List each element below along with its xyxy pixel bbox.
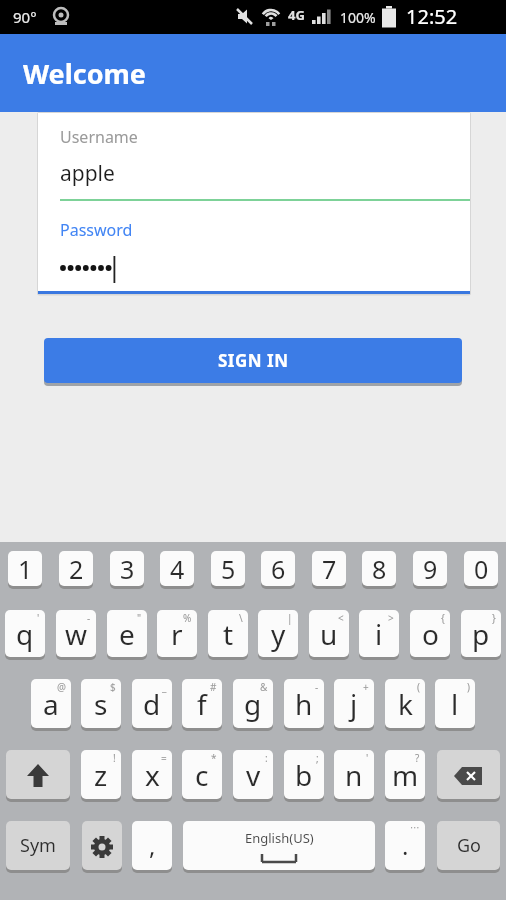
button[interactable] <box>38 201 470 294</box>
button[interactable]: b <box>284 750 324 802</box>
button[interactable]: k <box>385 679 425 731</box>
button[interactable]: s <box>81 679 121 731</box>
staticText: v <box>246 756 261 794</box>
staticText: 1 <box>18 552 33 586</box>
staticText: q <box>16 615 34 653</box>
button[interactable]: w <box>56 610 96 660</box>
staticText: f <box>197 685 207 723</box>
button[interactable]: m <box>385 750 425 802</box>
staticText: k <box>398 685 413 723</box>
button[interactable]: d <box>132 679 172 731</box>
button[interactable] <box>6 750 70 802</box>
staticText: 7 <box>322 552 337 586</box>
staticText: = <box>161 751 167 765</box>
staticText: 9 <box>423 552 438 586</box>
staticText: ' <box>366 751 369 765</box>
button[interactable]: i <box>359 610 399 660</box>
button[interactable]: h <box>284 679 324 731</box>
staticText: m <box>392 756 419 794</box>
staticText: , <box>149 829 156 862</box>
staticText: x <box>145 756 160 794</box>
button[interactable]: y <box>258 610 298 660</box>
button[interactable]: q <box>5 610 45 660</box>
button[interactable]: 2 <box>59 551 93 589</box>
staticText: 100% <box>340 8 376 27</box>
staticText: 5 <box>221 552 236 586</box>
staticText: y <box>271 615 286 653</box>
staticText: ) <box>467 680 470 694</box>
staticText: ? <box>415 751 420 765</box>
button[interactable]: Sym <box>6 821 70 873</box>
button[interactable]: 9 <box>413 551 447 589</box>
staticText: ! <box>113 751 116 765</box>
button[interactable]: . <box>385 821 425 873</box>
button[interactable]: 3 <box>110 551 144 589</box>
button[interactable]: 1 <box>8 551 42 589</box>
staticText: h <box>295 685 313 723</box>
staticText: < <box>338 611 344 625</box>
button[interactable]: z <box>81 750 121 802</box>
staticText: w <box>65 615 88 653</box>
button[interactable]: o <box>410 610 450 660</box>
staticText: s <box>94 685 108 723</box>
button[interactable]: e <box>107 610 147 660</box>
button[interactable]: 6 <box>261 551 295 589</box>
staticText: - <box>315 680 319 694</box>
button[interactable]: 7 <box>312 551 346 589</box>
staticText: ; <box>316 751 319 765</box>
staticText: t <box>223 615 234 653</box>
button[interactable]: l <box>435 679 475 731</box>
staticText: 4G <box>288 6 305 24</box>
button[interactable]: f <box>182 679 222 731</box>
staticText: 8 <box>372 552 387 586</box>
button[interactable]: t <box>208 610 248 660</box>
button[interactable]: , <box>132 821 172 873</box>
button[interactable]: u <box>309 610 349 660</box>
staticText: a <box>43 685 59 723</box>
staticText: \ <box>239 611 243 625</box>
button[interactable]: p <box>461 610 501 660</box>
staticText: u <box>320 615 338 653</box>
staticText: . <box>402 829 409 862</box>
staticText: r <box>171 615 183 653</box>
staticText: p <box>472 615 490 653</box>
staticText: 0 <box>474 552 489 586</box>
button[interactable]: 5 <box>211 551 245 589</box>
button[interactable] <box>82 821 122 873</box>
button[interactable]: v <box>233 750 273 802</box>
staticText: l <box>451 685 459 723</box>
staticText: { <box>441 611 445 625</box>
staticText: ( <box>417 680 420 694</box>
button[interactable]: x <box>132 750 172 802</box>
button[interactable]: Go <box>437 821 500 873</box>
button[interactable]: 4 <box>160 551 194 589</box>
button[interactable] <box>437 750 500 802</box>
staticText: } <box>492 611 496 625</box>
button[interactable] <box>38 113 470 201</box>
staticText: b <box>295 756 313 794</box>
staticText: Username <box>60 126 138 148</box>
staticText: SIGN IN <box>218 349 289 372</box>
staticText: Welcome <box>23 55 146 92</box>
button[interactable]: r <box>157 610 197 660</box>
button[interactable]: English(US) <box>183 821 375 873</box>
staticText: 4 <box>170 552 185 586</box>
button[interactable]: 0 <box>464 551 498 589</box>
button[interactable]: c <box>182 750 222 802</box>
staticText: 90° <box>13 7 37 27</box>
staticText: Sym <box>20 833 56 858</box>
staticText: 3 <box>120 552 135 586</box>
staticText: e <box>119 615 135 653</box>
staticText: @ <box>57 680 66 694</box>
staticText: o <box>422 615 439 653</box>
button[interactable]: j <box>334 679 374 731</box>
button[interactable]: 8 <box>362 551 396 589</box>
button[interactable]: n <box>334 750 374 802</box>
staticText: _ <box>162 680 167 694</box>
button[interactable]: a <box>31 679 71 731</box>
staticText: + <box>363 680 369 694</box>
staticText: - <box>87 611 91 625</box>
button[interactable]: g <box>233 679 273 731</box>
staticText: 2 <box>69 552 84 586</box>
button[interactable]: SIGN IN <box>44 338 462 385</box>
